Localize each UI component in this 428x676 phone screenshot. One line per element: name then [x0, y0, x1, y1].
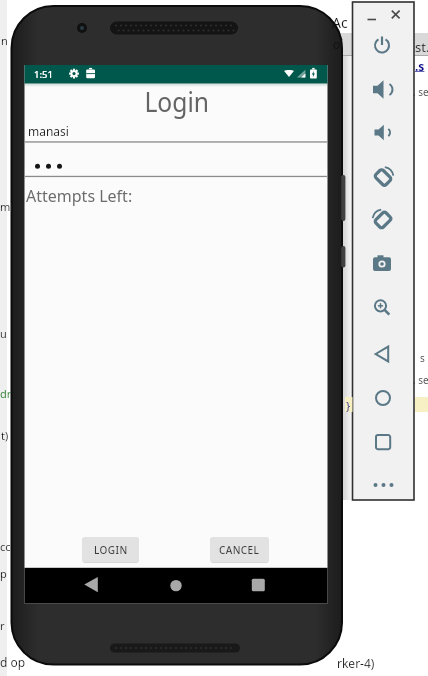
button[interactable]: [369, 163, 395, 189]
staticText: dr: [0, 386, 12, 401]
staticText: d op: [0, 654, 26, 670]
button[interactable]: [369, 120, 395, 146]
staticText: Attempts Left:: [26, 185, 133, 207]
button[interactable]: [369, 77, 395, 103]
button[interactable]: LOGIN: [82, 537, 139, 562]
button[interactable]: [369, 251, 395, 277]
staticText: .s: [415, 58, 425, 74]
button[interactable]: [233, 570, 283, 601]
button[interactable]: [369, 206, 395, 232]
button[interactable]: [388, 7, 404, 23]
staticText: manasi: [28, 123, 69, 139]
button[interactable]: [369, 472, 395, 498]
staticText: oi: [333, 36, 344, 52]
staticText: u: [0, 326, 7, 341]
button[interactable]: [25, 154, 327, 177]
staticText: LOGIN: [94, 543, 128, 557]
staticText: s: [420, 351, 425, 365]
button[interactable]: [369, 429, 395, 455]
staticText: t): [1, 428, 9, 443]
staticText: 1:51: [34, 68, 53, 81]
staticText: . se: [413, 85, 428, 99]
button[interactable]: [363, 12, 379, 28]
staticText: ml: [0, 199, 14, 214]
button[interactable]: [151, 570, 201, 601]
staticText: rker-4): [337, 655, 375, 671]
staticText: p: [0, 566, 7, 581]
staticText: st.: [415, 38, 428, 56]
staticText: Login: [144, 82, 209, 120]
button[interactable]: [369, 293, 395, 319]
staticText: . se: [413, 373, 428, 387]
staticText: cc: [0, 539, 11, 554]
button[interactable]: [369, 385, 395, 411]
staticText: CANCEL: [219, 543, 260, 557]
staticText: r: [0, 618, 5, 633]
button[interactable]: [369, 341, 395, 367]
button[interactable]: [369, 33, 395, 59]
button[interactable]: [66, 570, 116, 601]
button[interactable]: [25, 120, 327, 143]
staticText: }: [346, 398, 351, 413]
staticText: Act: [332, 13, 352, 29]
staticText: n: [1, 33, 8, 48]
button[interactable]: CANCEL: [210, 537, 269, 562]
